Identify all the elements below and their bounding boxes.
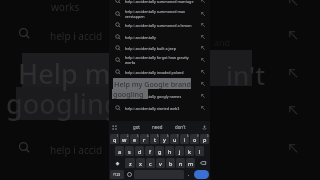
button[interactable]: y <box>160 134 169 144</box>
button[interactable]: help i accidentally brand googling <box>109 78 210 90</box>
button[interactable]: w <box>120 134 129 144</box>
button[interactable]: Backspace <box>196 158 209 168</box>
button[interactable]: z <box>125 158 135 168</box>
button[interactable]: g <box>155 146 164 156</box>
staticText: got <box>133 124 140 130</box>
button[interactable]: help i accidentally invaded poland <box>109 66 210 78</box>
staticText: works <box>51 0 80 14</box>
button[interactable]: k <box>185 146 194 156</box>
staticText: k <box>188 148 191 155</box>
staticText: don't <box>175 124 186 130</box>
button[interactable]: Voice input <box>202 125 207 130</box>
button[interactable]: v <box>156 158 165 168</box>
staticText: googling <box>113 89 144 99</box>
staticText: need <box>152 124 163 130</box>
staticText: m <box>188 160 194 167</box>
button[interactable]: help i accidentally googly names <box>109 90 210 102</box>
staticText: z <box>129 160 132 167</box>
button[interactable]: r <box>140 134 149 144</box>
staticText: g <box>158 148 162 155</box>
staticText: f <box>149 148 151 155</box>
button[interactable]: help i accidentally <box>109 31 210 43</box>
staticText: p <box>203 136 207 143</box>
button[interactable]: Keyboard toolbar <box>112 125 117 130</box>
staticText: d <box>138 148 142 155</box>
staticText: 0 <box>207 134 209 138</box>
staticText: Help my <box>18 55 125 92</box>
staticText: . <box>188 171 190 178</box>
staticText: s <box>128 148 131 155</box>
button[interactable]: h <box>165 146 174 156</box>
button[interactable]: l <box>195 146 204 156</box>
staticText: help i accidentally forgot how gravity <box>125 55 189 60</box>
button[interactable]: x <box>136 158 145 168</box>
button[interactable]: s <box>125 146 134 156</box>
staticText: v <box>159 160 162 167</box>
button[interactable]: a <box>115 146 124 156</box>
staticText: h <box>168 148 172 155</box>
button[interactable]: help i accidentally summoned max <box>109 7 210 21</box>
button[interactable]: help i accidentally forgot how gravity <box>109 53 210 67</box>
button[interactable]: help i accidentally summoned a lemon <box>109 19 210 31</box>
button[interactable]: j <box>175 146 184 156</box>
staticText: o <box>193 136 197 143</box>
button[interactable]: t <box>150 134 159 144</box>
button[interactable]: f <box>145 146 154 156</box>
staticText: y <box>163 136 166 143</box>
staticText: t <box>154 136 156 143</box>
staticText: 6 <box>167 134 169 138</box>
staticText: 1 <box>117 134 119 138</box>
staticText: 5 <box>157 134 159 138</box>
button[interactable]: help i accidentally summoned marriage <box>109 0 210 7</box>
button[interactable]: help i accidentally started web3 <box>109 102 210 114</box>
staticText: help i accidentally summoned a lemon <box>125 23 192 28</box>
button[interactable]: help i accidentally built a jeep <box>109 42 210 54</box>
staticText: help i accid <box>50 29 103 43</box>
button[interactable]: o <box>190 134 199 144</box>
staticText: x <box>139 160 142 167</box>
staticText: e <box>133 136 137 143</box>
staticText: help i accidentally googly names <box>125 94 182 99</box>
staticText: help i accidentally built a jeep <box>125 46 176 51</box>
button[interactable]: e <box>130 134 139 144</box>
button[interactable]: p <box>200 134 209 144</box>
staticText: verstappen <box>125 14 145 19</box>
button[interactable]: i <box>180 134 189 144</box>
button[interactable]: m <box>186 158 195 168</box>
staticText: 4 <box>147 134 149 138</box>
staticText: in't <box>226 57 266 92</box>
staticText: n <box>179 160 183 167</box>
button[interactable]: b <box>166 158 175 168</box>
button[interactable]: Period <box>185 170 193 179</box>
button[interactable]: Shift <box>110 158 124 168</box>
staticText: q <box>113 136 117 143</box>
button[interactable]: c <box>146 158 155 168</box>
staticText: c <box>149 160 152 167</box>
button[interactable]: q <box>110 134 119 144</box>
staticText: r <box>143 136 146 143</box>
staticText: Help my Google brand <box>114 79 192 89</box>
staticText: b <box>169 160 173 167</box>
button[interactable]: n <box>176 158 185 168</box>
staticText: 3 <box>137 134 139 138</box>
staticText: works <box>125 60 136 65</box>
staticText: help i accidentally invaded poland <box>125 70 184 75</box>
staticText: l <box>199 148 201 155</box>
staticText: help i accidentally summoned marriage <box>125 0 194 4</box>
staticText: googling <box>6 85 121 122</box>
staticText: help i accidentally started web3 <box>125 106 180 111</box>
button[interactable]: ?123 <box>110 170 124 179</box>
staticText: j <box>179 148 181 155</box>
staticText: and <box>214 36 231 48</box>
staticText: 8 <box>187 134 189 138</box>
staticText: help i accid <box>50 143 103 157</box>
button[interactable]: u <box>170 134 179 144</box>
button[interactable]: Enter <box>194 170 209 179</box>
button[interactable]: d <box>135 146 144 156</box>
staticText: 2 <box>127 134 129 138</box>
staticText: help i accidentally brand googling <box>125 82 184 87</box>
staticText: w <box>122 136 127 143</box>
button[interactable]: Emoji <box>125 170 133 179</box>
staticText: i <box>184 136 186 143</box>
